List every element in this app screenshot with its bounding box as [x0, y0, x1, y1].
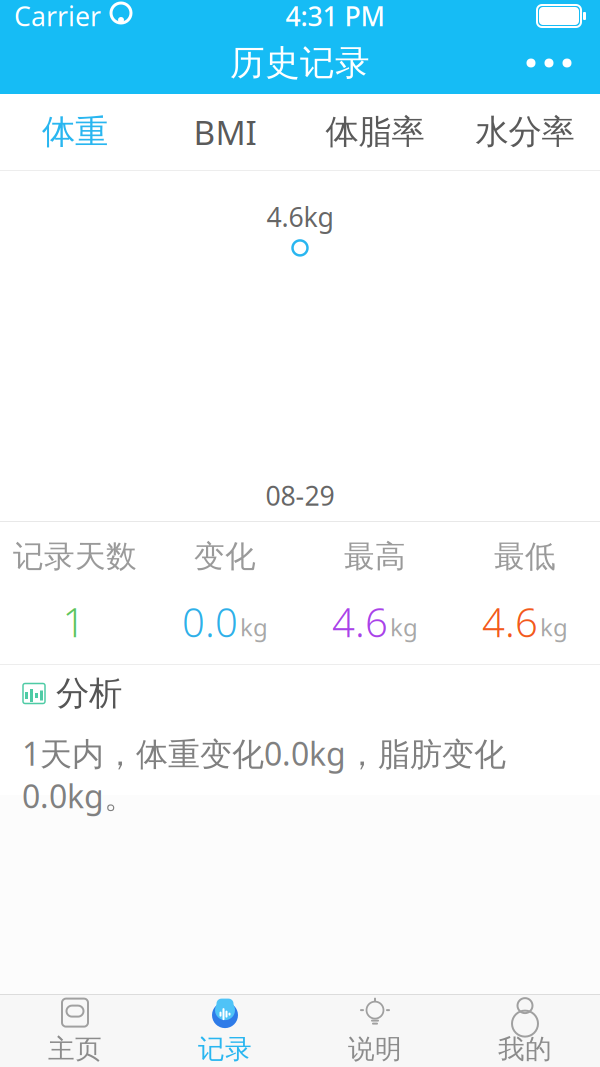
staticText: 最低: [494, 538, 556, 575]
staticText: 最高: [344, 538, 406, 575]
staticText: 4.6: [332, 595, 388, 648]
staticText: kg: [540, 611, 568, 643]
staticText: 体重: [42, 111, 108, 152]
button[interactable]: BMI: [150, 94, 300, 170]
staticText: 1: [62, 595, 85, 648]
staticText: 说明: [348, 1033, 402, 1065]
staticText: kg: [240, 611, 268, 643]
staticText: 4.6kg: [266, 199, 333, 234]
staticText: BMI: [193, 110, 256, 154]
staticText: 体脂率: [325, 111, 424, 152]
staticText: Carrier: [14, 0, 101, 34]
staticText: 4.6: [482, 595, 538, 648]
staticText: 1天内，体重变化0.0kg，脂肪变化0.0kg。: [22, 732, 506, 817]
button[interactable]: 记录: [150, 995, 300, 1067]
button[interactable]: 体重: [0, 94, 150, 170]
staticText: 记录天数: [13, 538, 137, 575]
staticText: 历史记录: [230, 42, 370, 84]
button[interactable]: 我的: [450, 995, 600, 1067]
staticText: 水分率: [475, 111, 574, 152]
staticText: 4:31 PM: [285, 0, 384, 34]
button[interactable]: More options: [514, 36, 584, 90]
staticText: 分析: [56, 673, 122, 714]
staticText: 0.0: [182, 595, 238, 648]
staticText: 记录: [198, 1033, 252, 1065]
button[interactable]: 水分率: [450, 94, 600, 170]
staticText: 08-29: [265, 478, 334, 513]
button[interactable]: 说明: [300, 995, 450, 1067]
staticText: 我的: [498, 1033, 552, 1065]
button[interactable]: 体脂率: [300, 94, 450, 170]
staticText: 变化: [194, 538, 256, 575]
button[interactable]: 主页: [0, 995, 150, 1067]
staticText: 主页: [48, 1033, 102, 1065]
staticText: kg: [390, 611, 418, 643]
